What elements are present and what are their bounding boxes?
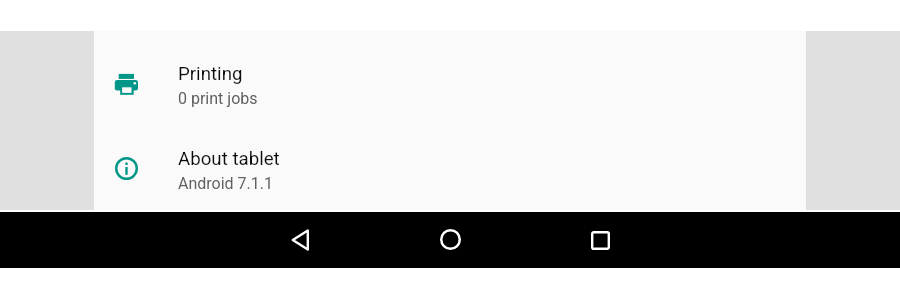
staticText: Android 7.1.1 <box>178 174 273 193</box>
button[interactable]: Back <box>276 216 324 264</box>
button[interactable]: Home <box>426 215 474 263</box>
button[interactable]: About tablet <box>94 130 806 206</box>
staticText: 0 print jobs <box>178 89 258 108</box>
button[interactable]: Recent apps <box>576 216 624 264</box>
button[interactable]: Printing <box>94 46 806 122</box>
staticText: About tablet <box>178 148 280 170</box>
staticText: Printing <box>178 63 243 85</box>
